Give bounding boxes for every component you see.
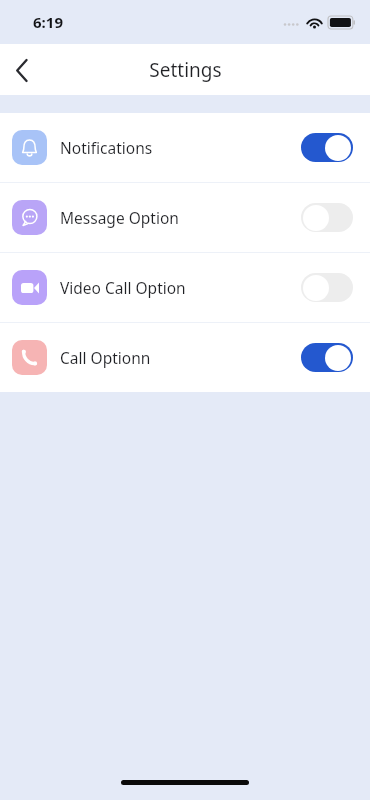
- staticText: 6:19: [33, 12, 63, 32]
- button[interactable]: On: [301, 343, 353, 372]
- staticText: Message Option: [60, 207, 179, 228]
- staticText: Video Call Option: [60, 277, 186, 298]
- button[interactable]: Off: [301, 203, 353, 232]
- button[interactable]: Off: [301, 273, 353, 302]
- staticText: Call Optionn: [60, 347, 151, 368]
- staticText: Notifications: [60, 137, 153, 158]
- button[interactable]: Video Call Option: [0, 253, 370, 322]
- button[interactable]: Notifications: [0, 113, 370, 182]
- button[interactable]: On: [301, 133, 353, 162]
- staticText: Settings: [149, 57, 222, 83]
- button[interactable]: Back: [0, 48, 44, 92]
- button[interactable]: Message Option: [0, 183, 370, 252]
- button[interactable]: Call Optionn: [0, 323, 370, 392]
